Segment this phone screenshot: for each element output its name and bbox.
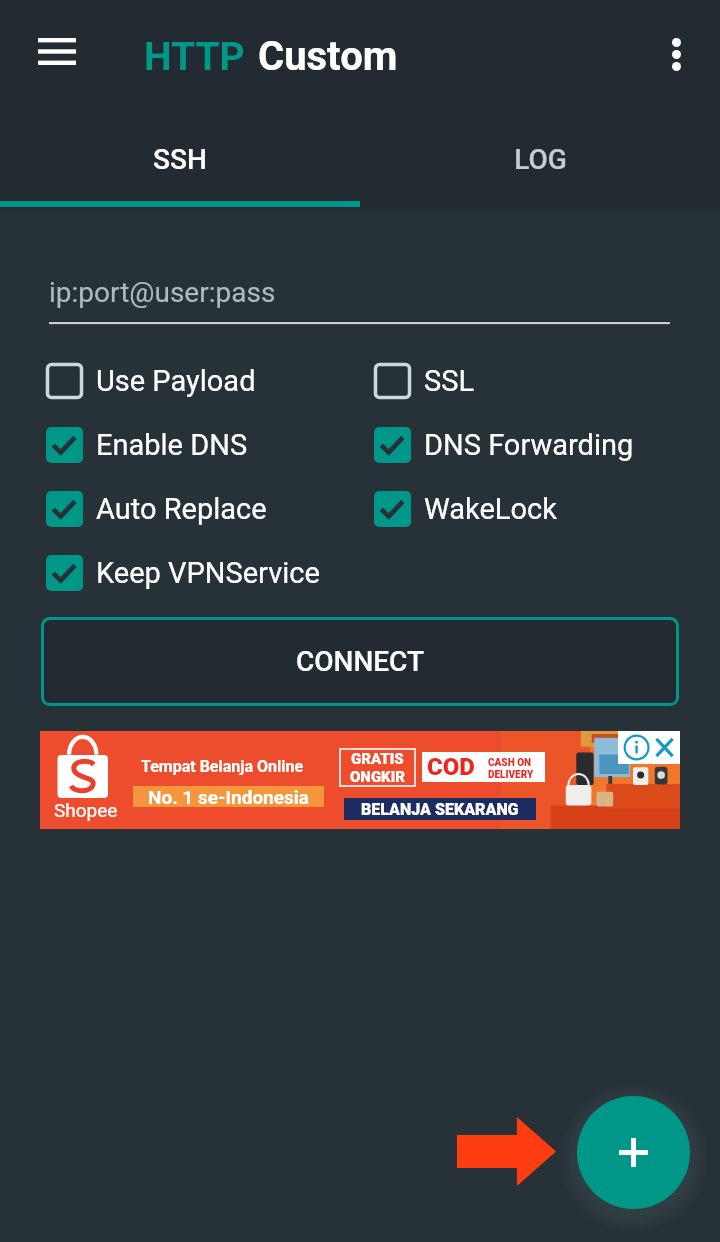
staticText: SSL	[424, 364, 475, 398]
staticText: CONNECT	[296, 645, 425, 678]
button[interactable]: Advertisement	[40, 731, 680, 829]
staticText: ip:port@user:pass	[49, 276, 276, 309]
button[interactable]: Server address input, ip:port@user:pass	[49, 254, 670, 322]
staticText: COD	[427, 753, 475, 781]
button[interactable]: Keep VPNService	[46, 541, 320, 605]
button[interactable]: More options	[644, 24, 708, 88]
button[interactable]: Close ad	[618, 731, 680, 764]
staticText: Use Payload	[96, 364, 256, 398]
button[interactable]: DNS Forwarding	[374, 413, 634, 477]
staticText: HTTP	[144, 34, 245, 80]
button[interactable]: Use Payload	[46, 349, 256, 413]
staticText: LOG	[514, 143, 567, 176]
staticText: Enable DNS	[96, 428, 248, 462]
staticText: GRATIS	[351, 750, 404, 768]
staticText: Keep VPNService	[96, 556, 320, 590]
staticText: DNS Forwarding	[424, 428, 634, 462]
button[interactable]: LOG	[360, 112, 720, 207]
staticText: WakeLock	[424, 492, 557, 526]
staticText: SSH	[153, 143, 207, 176]
button[interactable]: WakeLock	[374, 477, 557, 541]
button[interactable]: CONNECT	[41, 617, 679, 706]
button[interactable]: Add configuration	[577, 1096, 690, 1209]
staticText: CASH ON	[488, 757, 532, 769]
button[interactable]: Enable DNS	[46, 413, 248, 477]
button[interactable]: SSH	[0, 112, 360, 207]
button[interactable]: Open navigation menu	[21, 15, 91, 91]
staticText: ONGKIR	[350, 768, 406, 786]
staticText: Shopee	[54, 799, 118, 821]
staticText: No. 1 se-Indonesia	[148, 786, 309, 807]
staticText: Custom	[258, 33, 398, 80]
staticText: DELIVERY	[488, 769, 534, 781]
staticText: Tempat Belanja Online	[141, 757, 304, 776]
button[interactable]: Auto Replace	[46, 477, 267, 541]
staticText: BELANJA SEKARANG	[361, 800, 519, 819]
button[interactable]: SSL	[374, 349, 475, 413]
staticText: Auto Replace	[96, 492, 267, 526]
